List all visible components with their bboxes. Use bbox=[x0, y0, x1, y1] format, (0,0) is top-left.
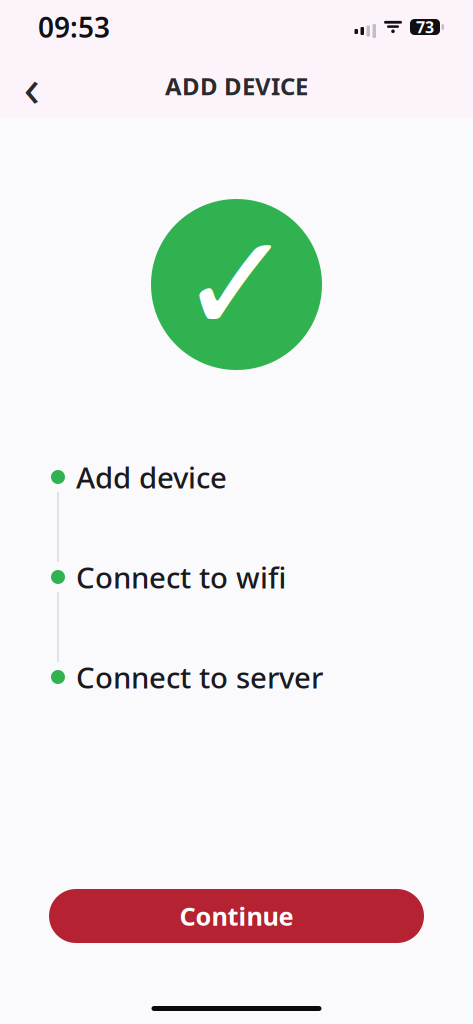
staticText: 09:53 bbox=[38, 8, 110, 46]
staticText: Add device bbox=[76, 457, 227, 496]
staticText: Connect to wifi bbox=[76, 557, 286, 596]
staticText: ‹ bbox=[23, 51, 40, 121]
staticText: Connect to server bbox=[76, 657, 323, 696]
staticText: 73 bbox=[416, 16, 434, 38]
button[interactable]: Continue bbox=[49, 889, 424, 943]
button[interactable]: Back bbox=[9, 63, 55, 109]
staticText: Continue bbox=[179, 899, 293, 933]
staticText: ADD DEVICE bbox=[165, 70, 308, 102]
staticText: ✓ bbox=[178, 206, 294, 363]
